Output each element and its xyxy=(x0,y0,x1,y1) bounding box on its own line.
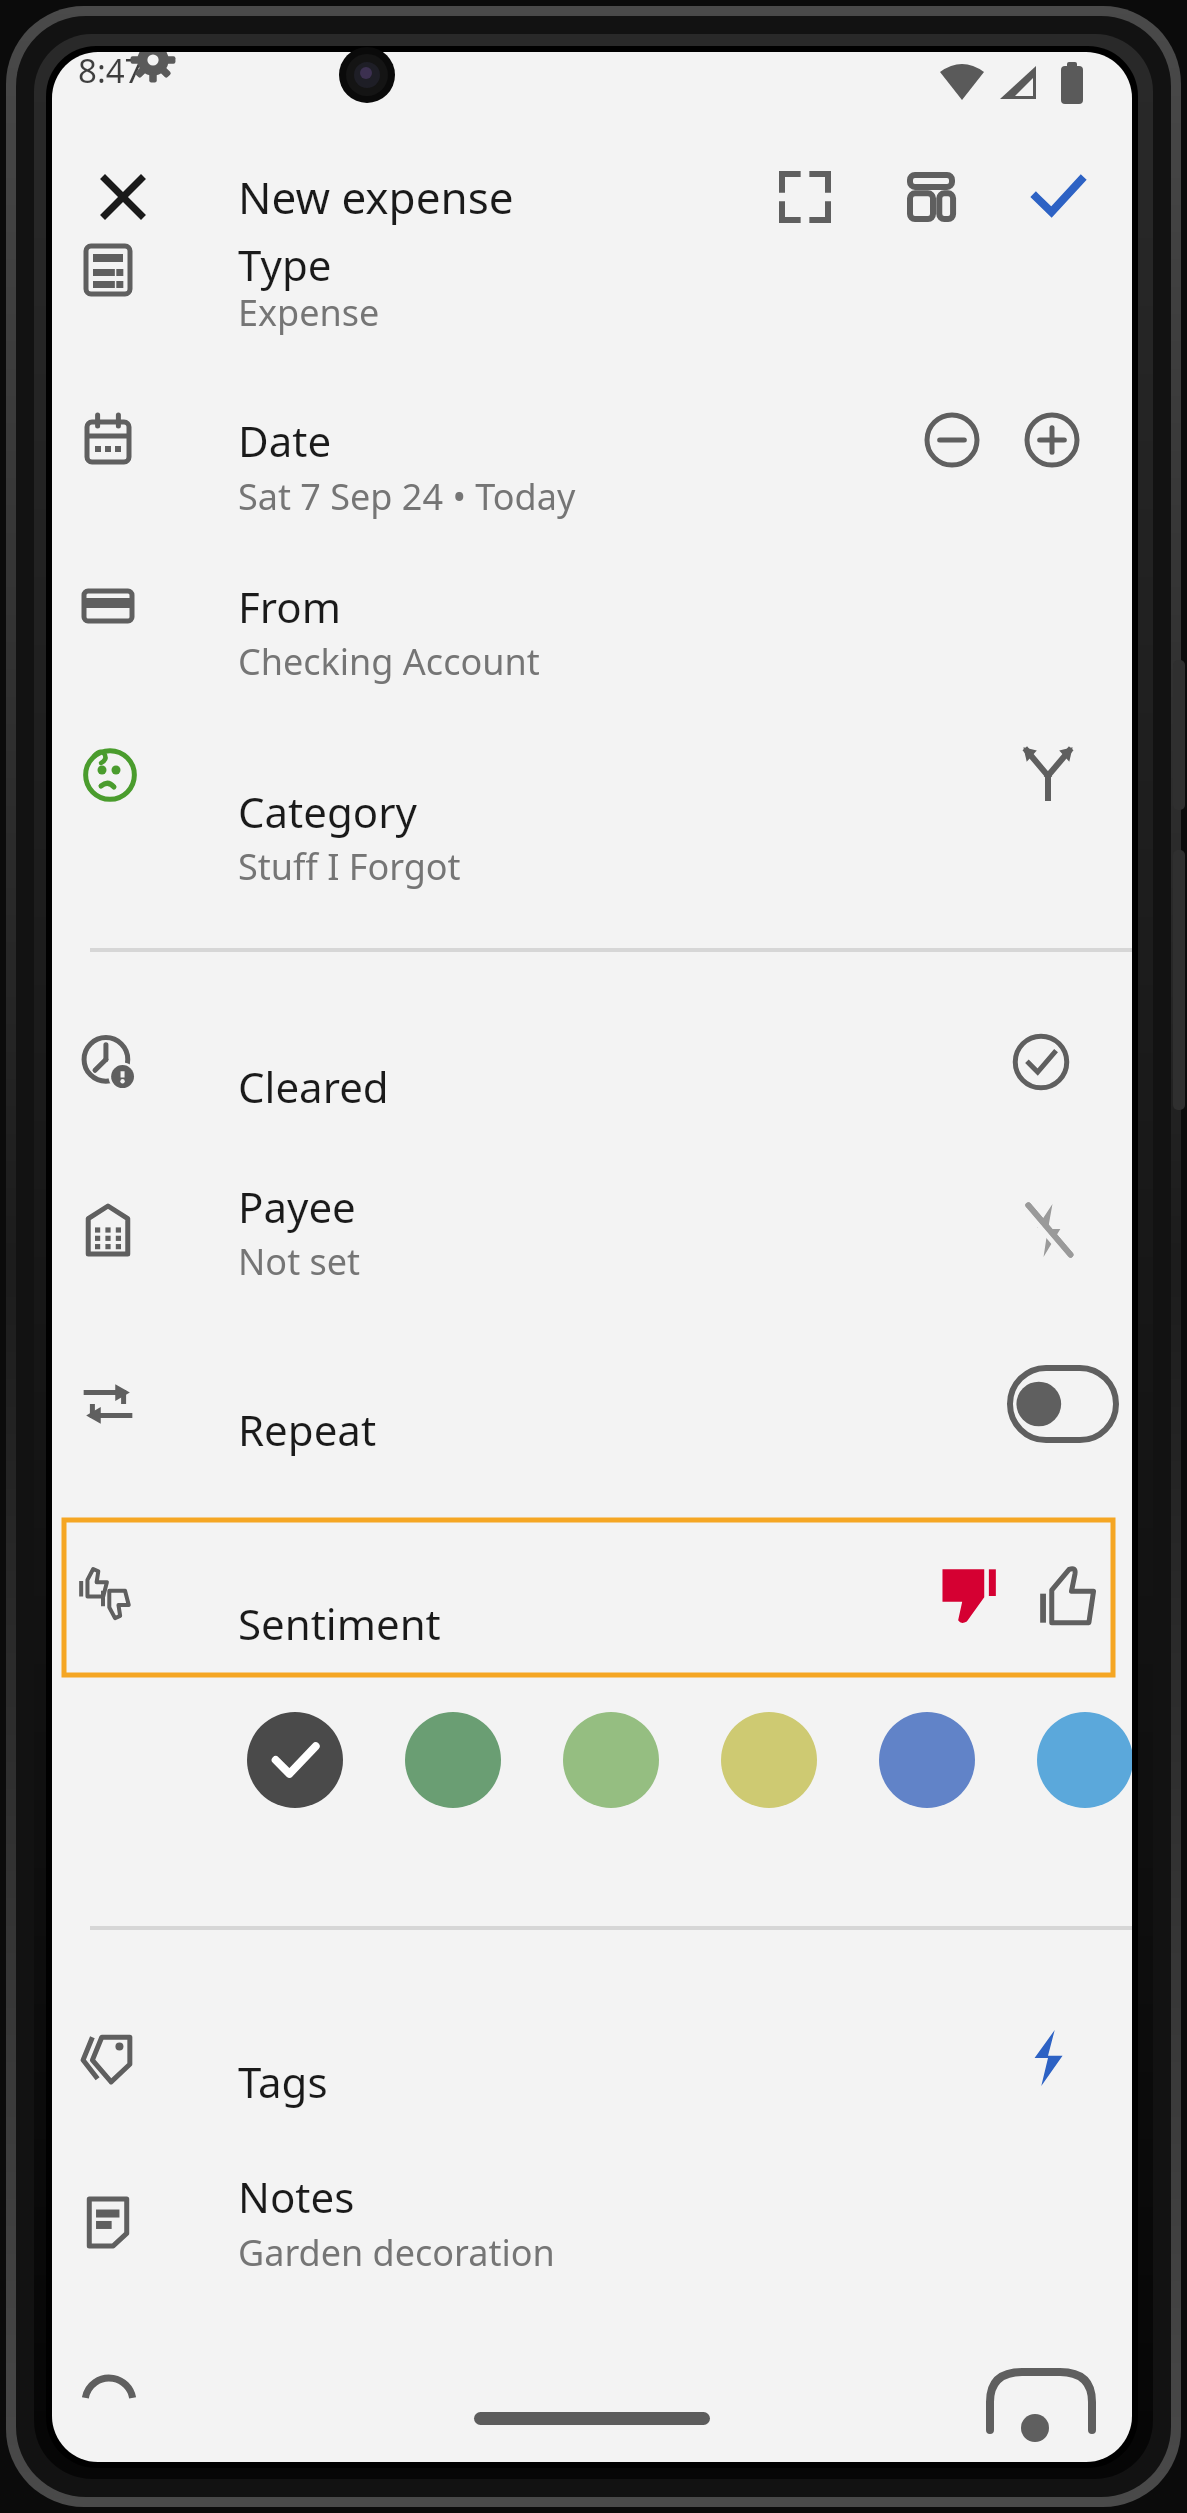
button[interactable]: Date xyxy=(52,400,1132,560)
button[interactable]: From xyxy=(52,565,1132,725)
button[interactable]: Positive sentiment xyxy=(1020,1548,1116,1644)
button[interactable]: Auto-fill off xyxy=(1000,1182,1096,1278)
staticText: 8:47 xyxy=(78,52,144,93)
button[interactable]: Tags xyxy=(52,1995,1132,2145)
staticText: Tags xyxy=(238,2053,328,2110)
staticText: Expense xyxy=(238,288,380,337)
staticText: Category xyxy=(238,783,417,840)
staticText: New expense xyxy=(238,167,514,227)
button[interactable]: Notes xyxy=(52,2150,1132,2310)
staticText: Sentiment xyxy=(238,1595,441,1652)
button[interactable]: Next day xyxy=(1004,392,1100,488)
button[interactable]: Previous day xyxy=(904,392,1000,488)
button[interactable]: Colour 4 xyxy=(721,1712,817,1808)
button[interactable]: Category xyxy=(52,730,1132,890)
staticText: Notes xyxy=(238,2168,355,2225)
button[interactable]: Templates xyxy=(886,152,976,242)
button[interactable]: Close xyxy=(78,152,168,242)
staticText: Stuff I Forgot xyxy=(238,842,461,891)
button[interactable]: Tag suggestions xyxy=(1000,2010,1096,2106)
button[interactable]: Repeat xyxy=(52,1345,1132,1505)
staticText: Not set xyxy=(238,1237,361,1286)
button[interactable]: Scan receipt xyxy=(760,152,850,242)
staticText: Cleared xyxy=(238,1058,389,1115)
staticText: Sat 7 Sep 24 • Today xyxy=(238,472,576,521)
staticText: Type xyxy=(238,236,332,293)
staticText: Date xyxy=(238,412,332,469)
button[interactable]: Split transaction xyxy=(1000,725,1096,821)
staticText: From xyxy=(238,578,341,635)
button[interactable]: Colour 5 xyxy=(879,1712,975,1808)
staticText: Checking Account xyxy=(238,637,540,686)
button[interactable]: Colour 3 xyxy=(563,1712,659,1808)
button[interactable]: Cleared state xyxy=(993,1014,1089,1110)
button[interactable]: Save xyxy=(1013,152,1103,242)
staticText: Payee xyxy=(238,1178,356,1235)
button[interactable]: Payee xyxy=(52,1175,1132,1335)
button[interactable]: Colour 2 xyxy=(405,1712,501,1808)
staticText: Repeat xyxy=(238,1401,377,1458)
staticText: Garden decoration xyxy=(238,2228,555,2277)
button[interactable]: Colour 6 xyxy=(1037,1712,1132,1808)
button[interactable] xyxy=(62,1518,1115,1677)
button[interactable]: Colour 1 xyxy=(247,1712,343,1808)
button[interactable]: Repeat toggle xyxy=(1008,1360,1118,1448)
button[interactable]: Negative sentiment xyxy=(920,1548,1016,1644)
button[interactable]: Cleared xyxy=(52,1020,1132,1170)
button[interactable]: Type xyxy=(52,240,1132,390)
